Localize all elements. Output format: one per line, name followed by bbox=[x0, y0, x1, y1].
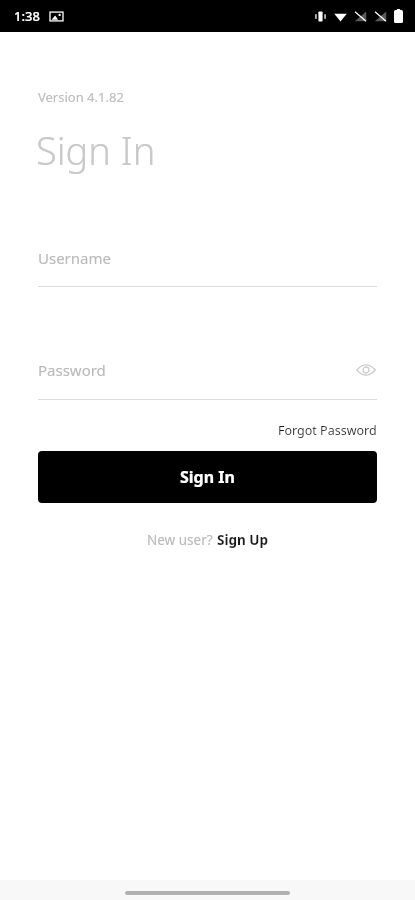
staticText: Username bbox=[38, 248, 111, 268]
staticText: New user? bbox=[147, 531, 217, 549]
button[interactable]: Sign Up bbox=[217, 529, 269, 551]
staticText: Version 4.1.82 bbox=[38, 88, 124, 106]
staticText: 1:38 bbox=[14, 7, 40, 25]
button[interactable]: Forgot Password bbox=[276, 420, 379, 441]
staticText: Forgot Password bbox=[278, 422, 377, 439]
button[interactable]: Show password bbox=[355, 359, 377, 381]
button[interactable]: Sign In bbox=[38, 451, 377, 503]
button[interactable]: Password bbox=[38, 359, 377, 381]
staticText: Sign In bbox=[36, 124, 156, 176]
staticText: Sign In bbox=[180, 466, 235, 488]
staticText: Password bbox=[38, 360, 106, 380]
button[interactable]: Username bbox=[38, 248, 377, 268]
staticText: Sign Up bbox=[217, 531, 269, 549]
